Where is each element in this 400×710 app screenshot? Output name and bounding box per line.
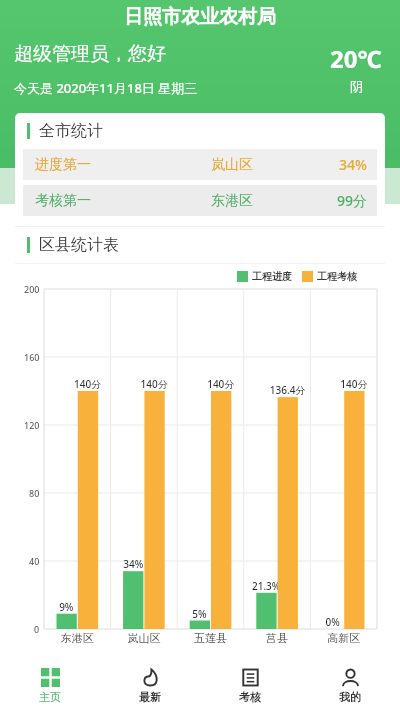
staticText: 区县统计表: [39, 235, 119, 255]
button[interactable]: 主页: [0, 662, 100, 710]
staticText: 工程进度: [252, 270, 292, 283]
staticText: 99分: [321, 191, 367, 210]
staticText: 工程考核: [317, 270, 357, 283]
staticText: 全市统计: [39, 121, 103, 141]
button[interactable]: 考核第一: [23, 185, 377, 216]
staticText: 今天是 2020年11月18日 星期三: [14, 79, 198, 97]
staticText: 我的: [339, 690, 361, 704]
staticText: 东港区: [211, 192, 253, 210]
staticText: 超级管理员，您好: [14, 42, 166, 66]
button[interactable]: 我的: [300, 662, 400, 710]
button[interactable]: 最新: [100, 662, 200, 710]
staticText: 进度第一: [35, 156, 91, 174]
button[interactable]: 考核: [200, 662, 300, 710]
staticText: 考核第一: [35, 192, 91, 210]
staticText: 考核: [239, 690, 261, 704]
staticText: 最新: [139, 690, 161, 704]
staticText: 日照市农业农村局: [124, 5, 276, 29]
staticText: 阴: [350, 78, 363, 94]
staticText: 34%: [321, 155, 367, 174]
button[interactable]: 进度第一: [23, 149, 377, 180]
staticText: 主页: [39, 690, 61, 704]
staticText: 岚山区: [211, 156, 253, 174]
staticText: 20℃: [330, 42, 382, 75]
